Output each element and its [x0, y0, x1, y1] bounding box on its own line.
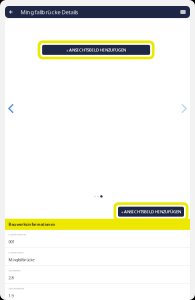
staticText: Bauwerksname	[8, 251, 23, 254]
staticText: Mingfallbrücke Details	[20, 8, 78, 16]
staticText: Bauwerksinformationen	[8, 222, 55, 227]
button[interactable]: Previous image	[5, 101, 17, 115]
staticText: 1.9	[8, 293, 13, 298]
staticText: + ANSICHTSBILD HINZUFÜGEN	[66, 47, 126, 53]
staticText: Zustandsnote	[8, 269, 20, 272]
staticText: 001	[8, 239, 14, 244]
button[interactable]: Next image	[178, 101, 190, 115]
staticText: 2.8	[8, 275, 13, 280]
button[interactable]: + ANSICHTSBILD HINZUFÜGEN	[115, 204, 187, 220]
button[interactable]: Menu	[176, 6, 190, 18]
staticText: Mingfallbrücke	[8, 257, 34, 262]
staticText: Bauwerksnummer	[8, 233, 26, 236]
staticText: + ANSICHTSBILD HINZUFÜGEN	[121, 209, 181, 215]
staticText: Substanzkennzahl	[8, 287, 24, 290]
button[interactable]: Back	[5, 6, 17, 18]
button[interactable]: + ANSICHTSBILD HINZUFÜGEN	[39, 42, 153, 58]
